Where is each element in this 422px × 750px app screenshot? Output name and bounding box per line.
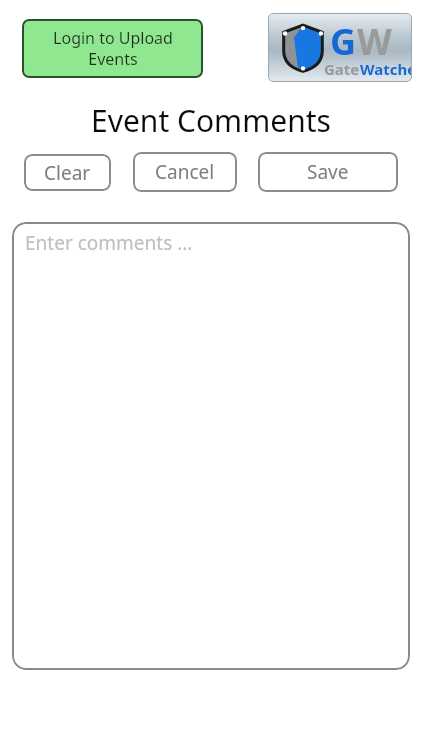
button[interactable]: GateWatcher logo [268,13,412,82]
staticText: Clear [44,160,91,186]
staticText: Watcher [360,59,412,79]
button[interactable]: Save [258,152,398,192]
button[interactable]: Login to Upload Events [22,19,203,78]
button[interactable]: Enter comments ... [12,222,410,670]
staticText: Save [307,159,349,185]
button[interactable]: Cancel [133,152,237,192]
staticText: W [357,17,392,66]
staticText: G [330,17,357,66]
staticText: Enter comments ... [25,230,193,256]
button[interactable]: Clear [24,154,111,191]
staticText: Gate [324,59,360,79]
staticText: Login to Upload Events [53,27,173,70]
staticText: Cancel [155,159,215,185]
staticText: Event Comments [91,100,331,141]
